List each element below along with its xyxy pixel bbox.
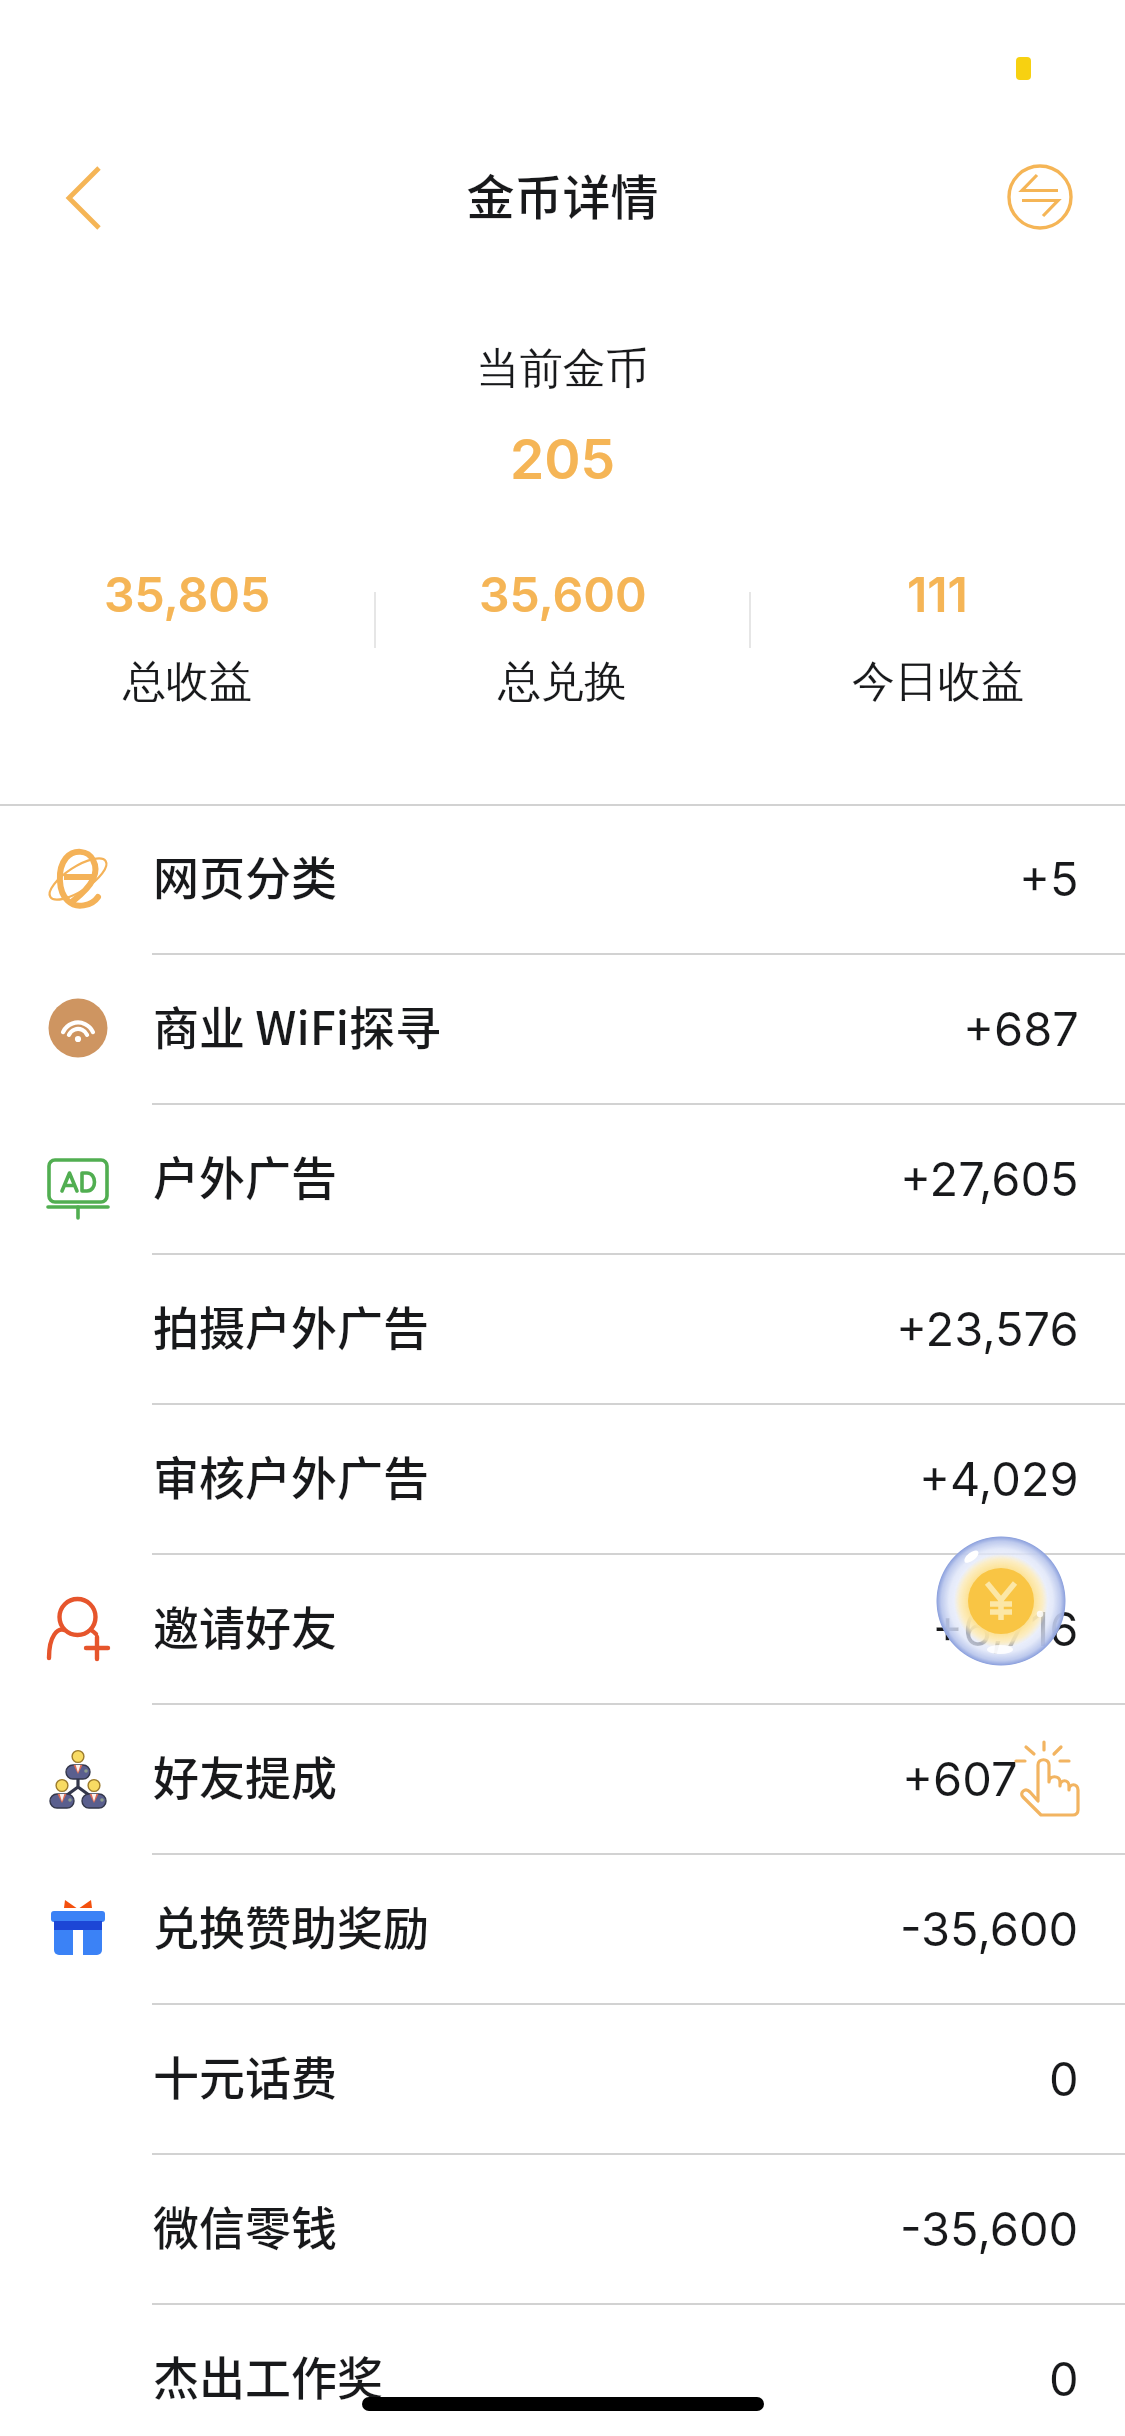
staticText: -35,600: [900, 2200, 1079, 2257]
staticText: +687: [963, 1000, 1079, 1057]
button[interactable]: 商业 WiFi探寻: [0, 953, 1125, 1103]
button[interactable]: 拍摄户外广告: [0, 1253, 1125, 1403]
button[interactable]: 杰出工作奖: [0, 2303, 1125, 2436]
staticText: 邀请好友: [153, 1592, 337, 1659]
staticText: 0: [1049, 2050, 1079, 2107]
button[interactable]: 审核户外广告: [0, 1403, 1125, 1553]
staticText: -35,600: [900, 1900, 1079, 1957]
staticText: +6,716: [932, 1600, 1079, 1657]
staticText: 兑换赞助奖励: [153, 1892, 429, 1959]
staticText: +607: [902, 1750, 1018, 1807]
staticText: 35,600: [479, 565, 647, 623]
staticText: 审核户外广告: [153, 1442, 429, 1509]
staticText: 35,805: [104, 565, 271, 623]
staticText: 微信零钱: [153, 2192, 337, 2259]
button[interactable]: 35,600: [375, 565, 750, 709]
button[interactable]: 35,805: [0, 565, 375, 709]
staticText: 0: [1049, 2350, 1079, 2407]
staticText: 今日收益: [852, 655, 1024, 709]
staticText: 网页分类: [153, 842, 337, 909]
staticText: 十元话费: [153, 2042, 337, 2109]
button[interactable]: 户外广告: [0, 1103, 1125, 1253]
staticText: +27,605: [900, 1150, 1079, 1207]
button[interactable]: Back: [29, 143, 139, 253]
staticText: 杰出工作奖: [153, 2342, 383, 2409]
staticText: 当前金币: [0, 342, 1125, 396]
button[interactable]: 网页分类: [0, 804, 1125, 953]
staticText: 111: [907, 565, 968, 623]
staticText: +23,576: [896, 1300, 1079, 1357]
other: Tap: [1008, 1740, 1098, 1830]
staticText: 总收益: [123, 655, 252, 709]
button[interactable]: 邀请好友: [0, 1553, 1125, 1703]
button[interactable]: 111: [750, 565, 1125, 709]
staticText: +4,029: [919, 1450, 1079, 1507]
button[interactable]: 好友提成: [0, 1703, 1125, 1853]
button[interactable]: 十元话费: [0, 2003, 1125, 2153]
button[interactable]: Exchange: [992, 149, 1088, 245]
staticText: 好友提成: [153, 1742, 337, 1809]
staticText: 总兑换: [498, 655, 627, 709]
staticText: +5: [1019, 850, 1079, 907]
button[interactable]: 兑换赞助奖励: [0, 1853, 1125, 2003]
staticText: 金币详情: [0, 159, 1125, 229]
staticText: 拍摄户外广告: [153, 1292, 429, 1359]
staticText: 商业 WiFi探寻: [153, 992, 442, 1059]
button[interactable]: 微信零钱: [0, 2153, 1125, 2303]
staticText: 205: [0, 426, 1125, 493]
staticText: 户外广告: [153, 1142, 337, 1209]
